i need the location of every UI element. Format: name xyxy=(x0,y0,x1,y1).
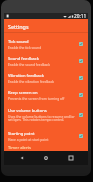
button[interactable]: Back xyxy=(15,151,29,165)
button[interactable]: Vibration feedback xyxy=(4,69,88,86)
staticText: Enable the tick sound xyxy=(8,45,42,49)
staticText: 20:11 xyxy=(74,13,87,19)
button[interactable]: Toggle setting xyxy=(79,76,83,80)
staticText: Enable the sound feedback xyxy=(8,62,50,66)
button[interactable]: Toggle setting xyxy=(79,59,83,63)
button[interactable]: Keep screen on xyxy=(4,86,88,103)
button[interactable]: Starting point xyxy=(4,127,88,144)
button[interactable]: Settings xyxy=(4,19,88,33)
staticText: Tick sound xyxy=(8,39,29,45)
button[interactable]: Timer alerts xyxy=(4,144,88,151)
button[interactable]: Toggle setting xyxy=(79,93,83,97)
staticText: Prevents the screen from turning off xyxy=(8,96,65,100)
staticText: Vibration feedback xyxy=(8,73,45,79)
button[interactable]: Tick sound xyxy=(4,35,88,52)
staticText: Sound feedback xyxy=(8,56,39,62)
staticText: Use volume buttons xyxy=(8,108,47,114)
button[interactable]: Home xyxy=(39,151,53,165)
staticText: Uses the volume buttons to resume and/or… xyxy=(8,114,77,122)
button[interactable]: Use volume buttons xyxy=(4,103,88,127)
button[interactable]: Sound feedback xyxy=(4,52,88,69)
button[interactable]: Toggle setting xyxy=(79,134,83,138)
staticText: Settings xyxy=(8,23,29,30)
staticText: Have a point at start point xyxy=(8,137,49,141)
button[interactable]: Recents xyxy=(64,151,78,165)
button[interactable]: Toggle setting xyxy=(79,113,83,117)
staticText: Enable the vibration feedback xyxy=(8,79,54,83)
button[interactable]: Toggle setting xyxy=(79,42,83,46)
staticText: Starting point xyxy=(8,131,35,137)
staticText: Timer alerts xyxy=(8,145,31,150)
staticText: Keep screen on xyxy=(8,90,38,96)
